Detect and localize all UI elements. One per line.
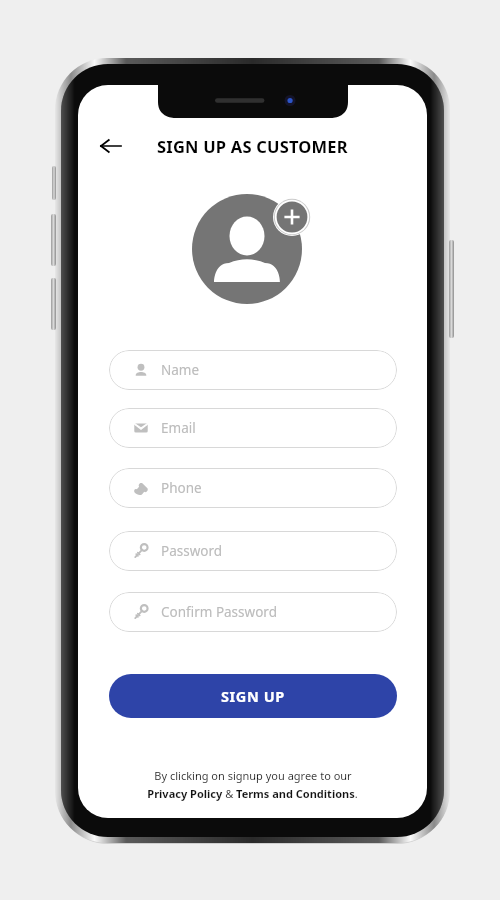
staticText: SIGN UP AS CUSTOMER bbox=[157, 135, 348, 157]
staticText: Password bbox=[161, 542, 223, 560]
button[interactable]: Confirm Password bbox=[109, 592, 397, 632]
button[interactable]: Email bbox=[109, 408, 397, 448]
staticText: Email bbox=[161, 419, 196, 437]
button[interactable]: SIGN UP bbox=[109, 674, 397, 718]
staticText: Privacy Policy & Terms and Conditions. bbox=[147, 786, 358, 801]
staticText: By clicking on signup you agree to our bbox=[154, 768, 352, 783]
staticText: Name bbox=[161, 361, 200, 379]
staticText: SIGN UP bbox=[221, 686, 285, 706]
button[interactable]: Phone bbox=[109, 468, 397, 508]
button[interactable]: Add profile photo bbox=[192, 190, 314, 312]
button[interactable]: Privacy Policy & Terms and Conditions. bbox=[147, 786, 358, 801]
staticText: Phone bbox=[161, 479, 202, 497]
button[interactable]: Name bbox=[109, 350, 397, 390]
staticText: Confirm Password bbox=[161, 603, 277, 621]
button[interactable]: Back bbox=[94, 129, 128, 163]
button[interactable]: Password bbox=[109, 531, 397, 571]
